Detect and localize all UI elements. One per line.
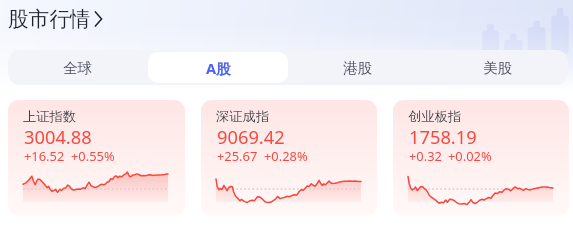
staticText: 创业板指 xyxy=(408,108,462,125)
staticText: 全球 xyxy=(63,59,93,77)
staticText: A股 xyxy=(206,58,231,78)
staticText: +0.32 xyxy=(409,147,442,165)
button[interactable]: 美股 xyxy=(428,52,568,83)
staticText: 深证成指 xyxy=(216,108,270,125)
staticText: 美股 xyxy=(483,59,513,77)
staticText: 3004.88 xyxy=(24,124,92,149)
staticText: +25.67 xyxy=(217,147,258,165)
button[interactable]: 港股 xyxy=(288,52,428,83)
button[interactable]: 全球 xyxy=(8,52,148,83)
staticText: 上证指数 xyxy=(23,108,77,125)
button[interactable]: 创业板指 xyxy=(393,100,569,216)
staticText: +0.28% xyxy=(264,147,308,165)
staticText: 港股 xyxy=(343,59,373,77)
staticText: 9069.42 xyxy=(217,124,285,149)
button[interactable]: 深证成指 xyxy=(201,100,377,216)
staticText: +0.02% xyxy=(448,147,492,165)
staticText: 1758.19 xyxy=(409,124,477,149)
staticText: +0.55% xyxy=(71,147,115,165)
staticText: 股市行情 xyxy=(8,6,91,32)
staticText: +16.52 xyxy=(24,147,65,165)
button[interactable]: A股 xyxy=(148,52,288,83)
button[interactable]: 股市行情 xyxy=(8,6,103,32)
button[interactable]: 上证指数 xyxy=(8,100,185,216)
